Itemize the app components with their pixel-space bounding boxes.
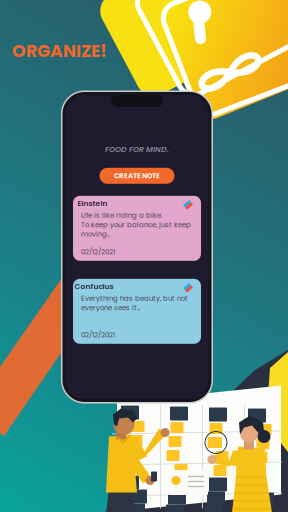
staticText: Everything has beauty, but not: [81, 293, 188, 303]
staticText: moving...: [81, 229, 110, 239]
staticText: everyone sees it...: [81, 303, 140, 313]
staticText: FOOD FOR MIND.: [105, 144, 169, 155]
staticText: Confucius: [74, 281, 113, 292]
staticText: Einstein: [78, 198, 108, 209]
staticText: Life is like riding a bike.: [81, 210, 162, 220]
staticText: To keep your balance, just keep: [81, 220, 191, 230]
button[interactable]: Confucius: [73, 279, 201, 344]
button[interactable]: CREATE NOTE: [99, 168, 174, 184]
staticText: 02/12/2021: [81, 247, 115, 257]
button[interactable]: Einstein: [73, 196, 201, 261]
staticText: CREATE NOTE: [114, 171, 160, 181]
staticText: ORGANIZE!: [12, 39, 107, 63]
staticText: 02/12/2021: [81, 330, 115, 340]
